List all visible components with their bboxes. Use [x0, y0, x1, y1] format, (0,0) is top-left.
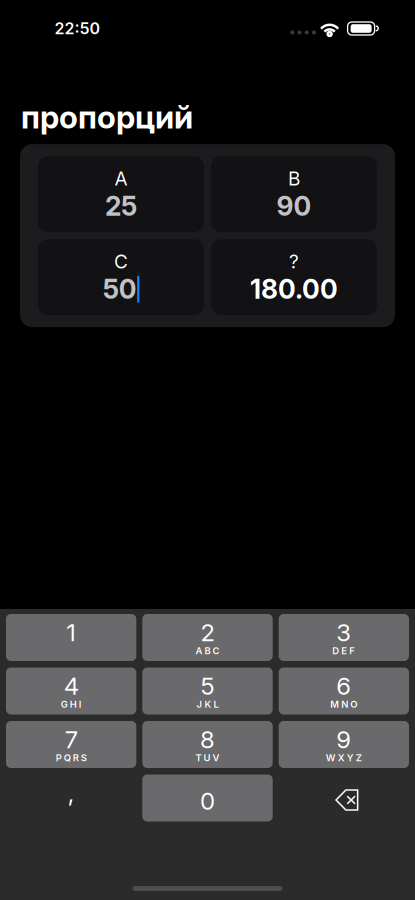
staticText: J K L: [196, 698, 218, 710]
staticText: T U V: [195, 752, 219, 763]
staticText: A B C: [195, 645, 219, 656]
button[interactable]: 6: [279, 667, 409, 714]
button[interactable]: 7: [6, 721, 136, 768]
staticText: 4: [64, 671, 79, 700]
staticText: 7: [65, 725, 78, 754]
staticText: 180.00: [250, 273, 338, 305]
button[interactable]: A: [38, 156, 204, 232]
staticText: 0: [200, 786, 215, 815]
staticText: ?: [289, 250, 299, 273]
staticText: A: [114, 167, 127, 190]
staticText: C: [114, 250, 128, 273]
staticText: 1: [66, 618, 76, 647]
staticText: 5: [200, 671, 214, 700]
button[interactable]: 3: [279, 614, 409, 661]
staticText: ,: [68, 778, 75, 807]
button[interactable]: 1: [6, 614, 136, 661]
staticText: M N O: [330, 698, 357, 710]
staticText: P Q R S: [56, 752, 87, 763]
button[interactable]: C: [38, 239, 204, 315]
button[interactable]: 2: [142, 614, 273, 661]
button[interactable]: B: [211, 156, 377, 232]
button[interactable]: 9: [279, 721, 409, 768]
staticText: 90: [276, 190, 311, 222]
staticText: 9: [336, 725, 351, 754]
button[interactable]: Delete: [279, 774, 409, 821]
staticText: 22:50: [54, 19, 100, 38]
button[interactable]: 8: [142, 721, 273, 768]
button[interactable]: 5: [142, 667, 273, 714]
staticText: 6: [336, 671, 351, 700]
staticText: B: [288, 167, 300, 190]
staticText: 50: [103, 273, 137, 305]
staticText: 8: [200, 725, 215, 754]
staticText: W X Y Z: [326, 752, 362, 763]
staticText: 3: [336, 618, 351, 647]
button[interactable]: 4: [6, 667, 136, 714]
button[interactable]: ,: [6, 774, 136, 821]
staticText: G H I: [61, 698, 82, 710]
button[interactable]: ?: [211, 239, 377, 315]
staticText: 2: [200, 618, 214, 647]
staticText: D E F: [332, 645, 355, 656]
staticText: пропорций: [21, 98, 193, 136]
button[interactable]: 0: [142, 774, 273, 821]
staticText: 25: [105, 190, 137, 222]
